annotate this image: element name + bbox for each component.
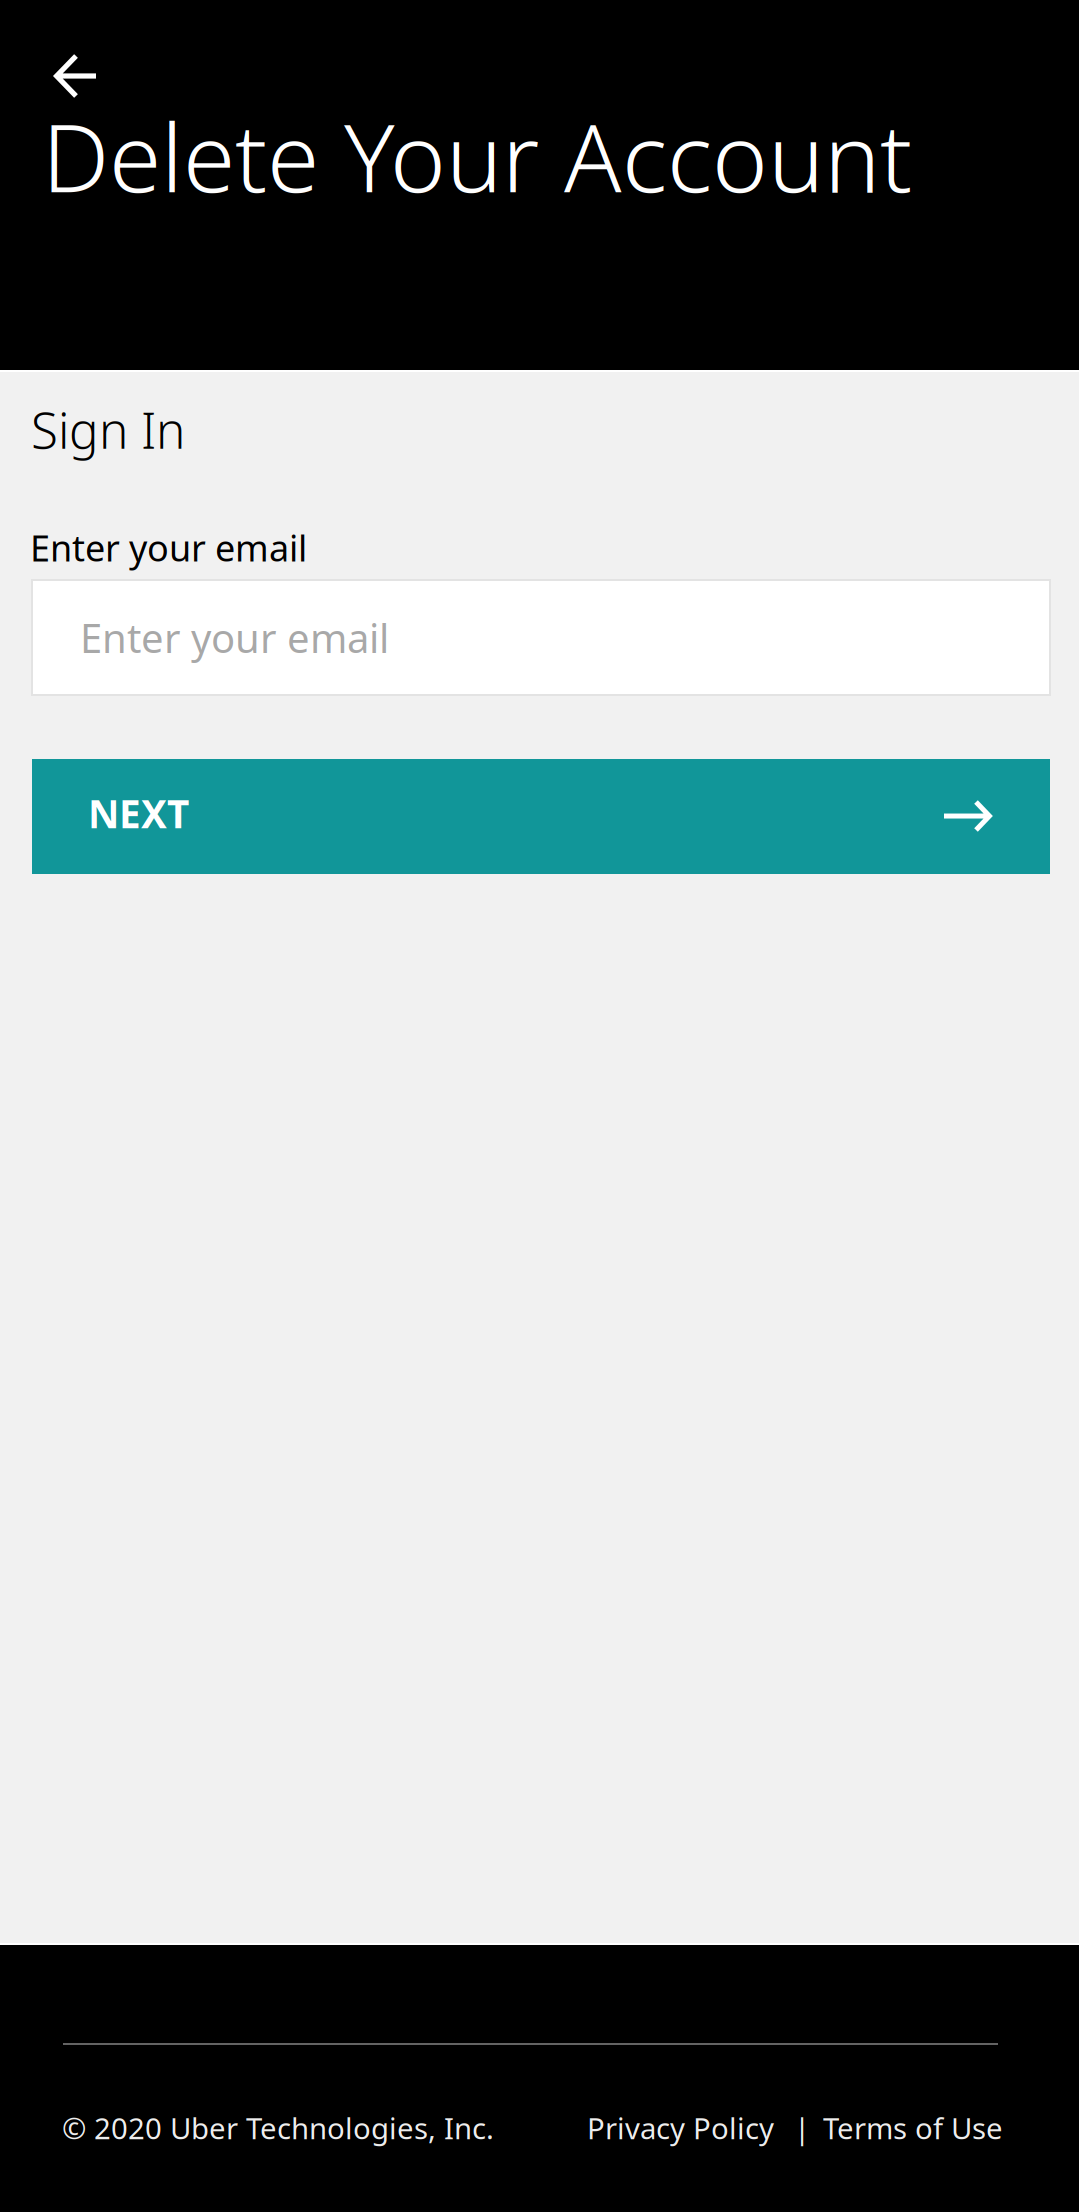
- staticText: |: [794, 2108, 810, 2148]
- staticText: Enter your email: [80, 610, 389, 665]
- button[interactable]: Privacy Policy: [587, 2108, 774, 2148]
- staticText: © 2020 Uber Technologies, Inc.: [62, 2108, 494, 2148]
- staticText: Privacy Policy: [587, 2108, 774, 2148]
- staticText: Terms of Use: [823, 2108, 1003, 2148]
- staticText: NEXT: [88, 787, 189, 840]
- button[interactable]: Back: [28, 28, 124, 124]
- button[interactable]: Terms of Use: [823, 2108, 1003, 2148]
- button[interactable]: Enter your email: [32, 580, 1050, 695]
- staticText: Sign In: [31, 396, 185, 463]
- button[interactable]: NEXT: [32, 759, 1050, 874]
- staticText: Enter your email: [30, 523, 307, 572]
- staticText: Delete Your Account: [42, 91, 912, 220]
